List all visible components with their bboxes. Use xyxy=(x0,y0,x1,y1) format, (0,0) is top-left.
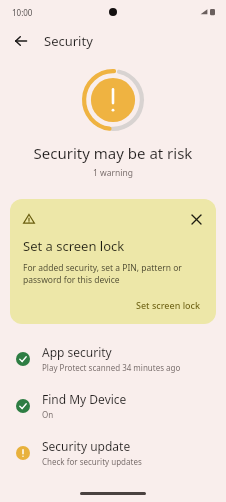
button[interactable]: Find My Device xyxy=(0,389,226,422)
staticText: On xyxy=(42,409,54,420)
staticText: 1 warning xyxy=(0,167,226,179)
button[interactable]: App security xyxy=(0,342,226,375)
button[interactable]: Dismiss xyxy=(187,210,205,228)
staticText: Find My Device xyxy=(42,391,127,407)
staticText: Security xyxy=(44,32,93,50)
staticText: Check for security updates xyxy=(42,456,142,467)
button[interactable]: Dismiss xyxy=(10,199,216,324)
button[interactable]: Back xyxy=(8,28,34,54)
staticText: Security update xyxy=(42,438,131,454)
staticText: Set a screen lock xyxy=(23,237,125,255)
staticText: Play Protect scanned 34 minutes ago xyxy=(42,362,181,373)
staticText: Set screen lock xyxy=(136,299,201,311)
button[interactable]: Security update xyxy=(0,436,226,469)
button[interactable]: Set screen lock xyxy=(132,297,205,313)
staticText: Security may be at risk xyxy=(0,143,226,163)
staticText: App security xyxy=(42,344,112,360)
staticText: For added security, set a PIN, pattern o… xyxy=(23,262,200,286)
staticText: 10:00 xyxy=(12,7,33,18)
